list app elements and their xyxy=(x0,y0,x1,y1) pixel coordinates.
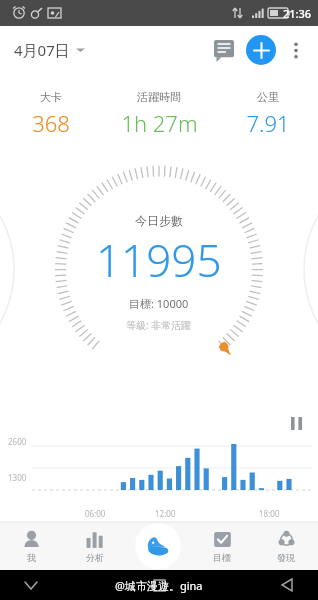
button[interactable]: More options xyxy=(278,32,314,68)
staticText: 公里 xyxy=(257,90,279,104)
staticText: 今日步數 xyxy=(135,213,183,228)
button[interactable]: 分析 xyxy=(63,522,126,570)
staticText: 7.91 xyxy=(246,108,290,138)
button[interactable]: 大卡 xyxy=(0,88,101,140)
button[interactable]: Steps xyxy=(135,523,181,569)
button[interactable]: 活躍時間 xyxy=(101,88,217,140)
button[interactable]: 發現 xyxy=(254,522,318,570)
button[interactable]: Messages xyxy=(204,30,244,70)
button[interactable]: Pause xyxy=(284,411,308,435)
staticText: 1h 27m xyxy=(121,108,198,138)
staticText: 分析 xyxy=(86,552,104,563)
button[interactable]: Recents xyxy=(274,572,300,598)
staticText: 等級: 非常活躍 xyxy=(126,318,192,332)
staticText: 活躍時間 xyxy=(137,90,181,104)
button[interactable]: 公里 xyxy=(217,88,318,140)
button[interactable]: 目標 xyxy=(190,522,254,570)
button[interactable]: 今日步數 xyxy=(96,213,222,332)
staticText: 12:00 xyxy=(155,508,176,519)
staticText: 發現 xyxy=(277,552,295,563)
staticText: 2600 xyxy=(8,436,27,447)
button[interactable]: 4月07日 xyxy=(0,34,95,66)
staticText: 21:36 xyxy=(283,6,312,21)
staticText: 1300 xyxy=(8,472,27,483)
button[interactable]: Add xyxy=(246,35,276,65)
staticText: 大卡 xyxy=(40,90,62,104)
staticText: 目標 xyxy=(213,552,231,563)
button[interactable]: Home xyxy=(146,572,172,598)
staticText: 11995 xyxy=(96,230,222,290)
button[interactable]: 我 xyxy=(0,522,63,570)
button[interactable]: Back down xyxy=(18,572,44,598)
staticText: 4月07日 xyxy=(14,40,70,60)
staticText: 我 xyxy=(27,552,36,563)
staticText: 06:00 xyxy=(85,508,106,519)
staticText: 18:00 xyxy=(259,508,280,519)
staticText: 368 xyxy=(32,108,70,138)
staticText: 目標: 10000 xyxy=(129,296,189,311)
staticText: @城市漫遊。gina xyxy=(115,578,203,593)
